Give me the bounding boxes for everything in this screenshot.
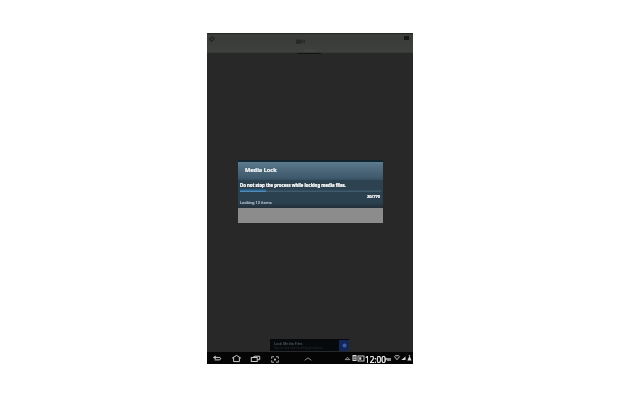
staticText: Lock Media Files: [274, 341, 303, 346]
staticText: Locking 12 items: [240, 200, 272, 205]
button[interactable]: Home: [230, 354, 242, 363]
button[interactable]: Lock Media Files: [270, 339, 349, 351]
staticText: 12:00: [365, 354, 386, 365]
staticText: Tap to see the locking progress.: [274, 345, 323, 349]
button[interactable]: App icon: [207, 34, 218, 45]
staticText: 20/770: [367, 194, 381, 199]
button[interactable]: Show notifications: [302, 353, 313, 364]
button[interactable]: More options: [402, 34, 412, 43]
button[interactable]: Recent apps: [249, 354, 261, 363]
staticText: PM: [385, 357, 391, 362]
button[interactable]: Back: [211, 354, 222, 362]
button[interactable]: Video: [295, 36, 323, 54]
button[interactable]: Screenshot: [269, 353, 280, 364]
staticText: Media Lock: [245, 166, 277, 174]
staticText: Video: [304, 48, 316, 54]
staticText: Do not stop the process while locking me…: [240, 182, 346, 188]
